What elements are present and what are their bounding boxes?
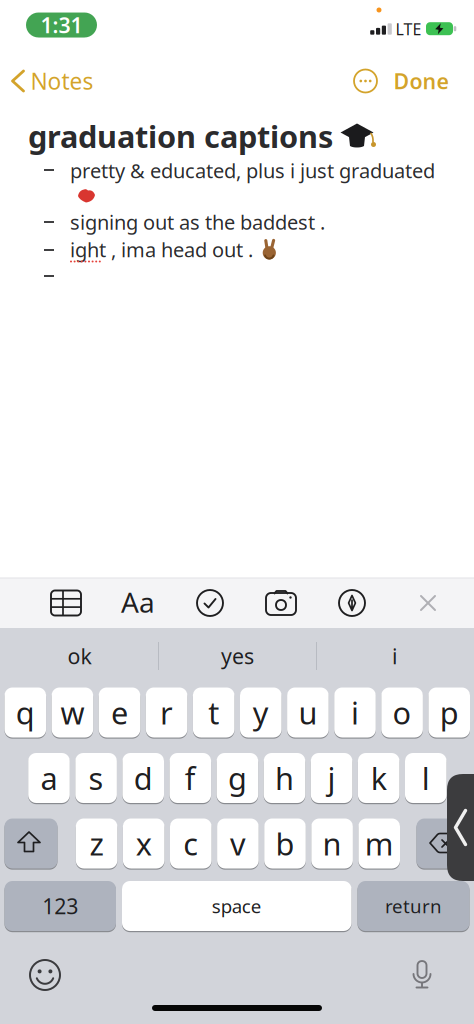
button[interactable]: o <box>381 686 423 738</box>
staticText: j <box>328 758 336 798</box>
staticText: l <box>422 758 430 798</box>
staticText: y <box>253 692 269 733</box>
staticText: r <box>160 692 173 733</box>
staticText: signing out as the baddest . <box>70 209 325 235</box>
staticText: u <box>298 692 317 733</box>
button[interactable]: Emoji <box>30 960 60 990</box>
button[interactable]: a <box>28 752 70 804</box>
staticText: q <box>16 692 35 733</box>
staticText: k <box>371 758 387 798</box>
button[interactable]: ok <box>4 632 154 680</box>
button[interactable]: y <box>240 686 282 738</box>
button[interactable]: Done <box>393 67 448 95</box>
button[interactable]: j <box>311 752 352 804</box>
button[interactable]: z <box>76 817 117 869</box>
staticText: s <box>89 758 104 798</box>
staticText: 123 <box>42 892 78 920</box>
staticText: g <box>228 758 247 798</box>
button[interactable]: Open side panel <box>447 774 474 881</box>
staticText: f <box>185 758 196 798</box>
staticText: c <box>183 823 198 864</box>
button[interactable]: space <box>122 880 351 932</box>
staticText: a <box>40 758 57 798</box>
button[interactable]: Insert photo <box>266 591 296 615</box>
button[interactable]: w <box>52 686 93 738</box>
button[interactable]: Shift <box>4 817 57 869</box>
staticText: o <box>393 692 412 733</box>
staticText: x <box>136 823 152 864</box>
button[interactable]: More actions <box>354 69 377 92</box>
button[interactable]: f <box>169 752 211 804</box>
staticText: d <box>134 758 153 798</box>
staticText: v <box>230 823 246 864</box>
staticText: ok <box>67 642 91 670</box>
staticText: b <box>275 823 294 864</box>
button[interactable]: p <box>428 686 470 738</box>
staticText: space <box>212 894 262 918</box>
staticText: LTE <box>395 18 421 40</box>
button[interactable]: r <box>146 686 187 738</box>
staticText: Aa <box>121 583 155 621</box>
button[interactable]: Delete <box>416 817 469 869</box>
staticText: i <box>351 692 359 733</box>
button[interactable]: Dismiss toolbar <box>420 595 436 611</box>
button[interactable]: e <box>99 686 140 738</box>
button[interactable]: i <box>320 632 470 680</box>
staticText: h <box>275 758 294 798</box>
staticText: t <box>208 692 219 733</box>
button[interactable]: x <box>123 817 164 869</box>
button[interactable]: d <box>122 752 164 804</box>
staticText: i <box>392 642 398 670</box>
button[interactable]: k <box>358 752 399 804</box>
button[interactable]: v <box>217 817 259 869</box>
staticText: ight , ima head out . <box>70 236 253 263</box>
button[interactable]: Markup <box>339 590 365 616</box>
button[interactable]: c <box>170 817 212 869</box>
button[interactable]: Insert table <box>51 590 81 615</box>
staticText: w <box>60 692 84 733</box>
staticText: e <box>111 692 128 733</box>
staticText: z <box>90 823 104 864</box>
button[interactable]: Return to call <box>26 12 97 37</box>
button[interactable]: m <box>358 817 400 869</box>
button[interactable]: q <box>4 686 46 738</box>
button[interactable]: Checklist <box>197 590 223 616</box>
button[interactable]: return <box>357 880 469 932</box>
button[interactable]: b <box>264 817 306 869</box>
staticText: p <box>440 692 459 733</box>
button[interactable]: Format text <box>121 583 155 621</box>
button[interactable]: g <box>217 752 258 804</box>
staticText: yes <box>221 642 254 670</box>
staticText: graduation captions <box>28 116 333 156</box>
button[interactable]: s <box>75 752 117 804</box>
button[interactable]: yes <box>162 632 312 680</box>
button[interactable]: n <box>311 817 353 869</box>
staticText: m <box>365 823 394 864</box>
button[interactable]: l <box>405 752 447 804</box>
staticText: 1:31 <box>40 11 82 39</box>
button[interactable]: h <box>264 752 305 804</box>
staticText: Notes <box>30 66 93 96</box>
button[interactable]: Dictation <box>412 959 432 991</box>
button[interactable]: t <box>193 686 234 738</box>
button[interactable]: Back to Notes <box>12 66 93 96</box>
staticText: Done <box>393 67 448 95</box>
button[interactable]: 123 <box>4 880 116 932</box>
staticText: return <box>385 894 442 918</box>
staticText: n <box>323 823 342 864</box>
staticText: pretty & educated, plus i just graduated <box>70 157 435 184</box>
button[interactable]: u <box>287 686 329 738</box>
button[interactable]: i <box>334 686 376 738</box>
